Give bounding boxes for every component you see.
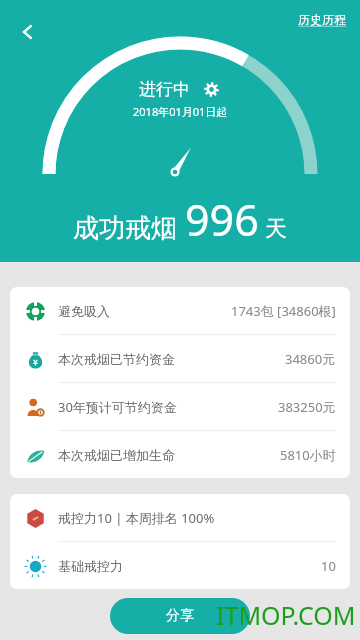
staticText: 2018年01月01日起 <box>133 104 228 119</box>
staticText: 本次戒烟已增加生命 <box>58 447 175 463</box>
button[interactable]: 30 year savings <box>10 383 350 430</box>
staticText: 成功戒烟 <box>73 212 177 245</box>
staticText: 383250元 <box>278 398 336 416</box>
other: 30 year savings <box>24 396 46 418</box>
staticText: 避免吸入 <box>58 303 110 319</box>
other: Money saved <box>24 348 46 370</box>
staticText: 34860元 <box>285 350 336 368</box>
button[interactable]: Base control <box>10 542 350 589</box>
button[interactable]: Back <box>6 10 50 54</box>
button[interactable]: 分享 <box>110 598 250 634</box>
staticText: ITMOP.COM <box>216 598 356 632</box>
button[interactable]: Avoid inhaling <box>10 287 350 334</box>
staticText: 1743包 [34860根] <box>231 302 336 320</box>
staticText: 5810小时 <box>280 446 336 464</box>
staticText: 10 <box>321 557 336 575</box>
staticText: 进行中 <box>139 79 190 100</box>
other: Life gained <box>24 444 46 466</box>
staticText: 历史历程 <box>298 12 346 27</box>
button[interactable]: Money saved <box>10 335 350 382</box>
staticText: 本次戒烟已节约资金 <box>58 351 175 367</box>
button[interactable]: 历史历程 <box>294 8 350 31</box>
other: Avoid inhaling <box>24 300 46 322</box>
button[interactable]: Life gained <box>10 431 350 478</box>
staticText: 戒控力10 | 本周排名 100% <box>58 509 215 527</box>
staticText: 分享 <box>166 607 194 625</box>
staticText: 基础戒控力 <box>58 558 123 574</box>
staticText: 996 <box>185 190 259 249</box>
button[interactable]: Control rank <box>10 494 350 541</box>
other: Base control <box>24 555 46 577</box>
button[interactable]: Settings <box>200 78 222 100</box>
staticText: 30年预计可节约资金 <box>58 398 177 416</box>
staticText: 天 <box>265 215 287 243</box>
other: Control rank <box>24 507 46 529</box>
